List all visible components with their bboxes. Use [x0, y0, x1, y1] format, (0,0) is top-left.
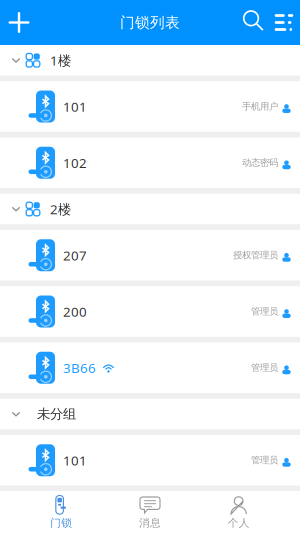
staticText: 207: [63, 246, 87, 264]
staticText: 门锁列表: [120, 13, 180, 31]
button[interactable]: 3B66: [0, 342, 300, 393]
button[interactable]: 200: [0, 286, 300, 337]
button[interactable]: 消息: [106, 491, 194, 533]
button[interactable]: 2楼: [0, 194, 300, 224]
staticText: 1楼: [50, 51, 71, 69]
staticText: 200: [63, 303, 87, 320]
staticText: 102: [63, 154, 87, 172]
staticText: 管理员: [251, 306, 278, 317]
staticText: 3B66: [63, 359, 96, 377]
button[interactable]: 101: [0, 435, 300, 485]
button[interactable]: Search: [238, 0, 268, 45]
button[interactable]: 101: [0, 81, 300, 132]
button[interactable]: 102: [0, 137, 300, 188]
staticText: 2楼: [50, 200, 71, 218]
button[interactable]: 207: [0, 230, 300, 280]
staticText: 消息: [139, 516, 161, 530]
staticText: 个人: [228, 516, 250, 530]
staticText: 管理员: [251, 362, 278, 373]
staticText: 管理员: [251, 454, 278, 466]
button[interactable]: Add lock: [0, 0, 38, 45]
button[interactable]: 个人: [194, 491, 283, 533]
button[interactable]: 未分组: [0, 399, 300, 429]
staticText: 门锁: [50, 516, 72, 530]
button[interactable]: 1楼: [0, 45, 300, 75]
staticText: 授权管理员: [233, 249, 278, 261]
staticText: 101: [63, 98, 87, 115]
button[interactable]: More options: [268, 0, 300, 45]
staticText: 动态密码: [242, 157, 278, 168]
staticText: 未分组: [37, 406, 76, 422]
staticText: 101: [63, 451, 87, 469]
staticText: 手机用户: [242, 101, 278, 112]
button[interactable]: 门锁: [17, 491, 106, 533]
